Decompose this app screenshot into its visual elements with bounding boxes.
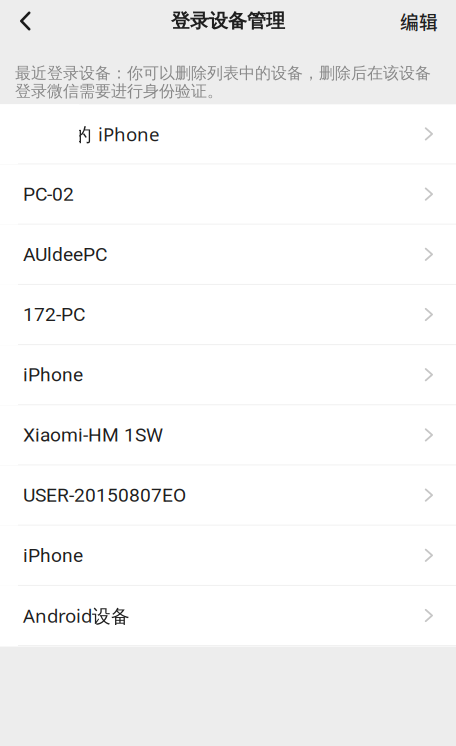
- staticText: USER-20150807EO: [23, 484, 186, 506]
- button[interactable]: Xiaomi-HM 1SW: [0, 405, 456, 465]
- button[interactable]: iPhone: [0, 526, 456, 586]
- button[interactable]: AUldeePC: [0, 225, 456, 285]
- staticText: 编辑: [400, 7, 438, 34]
- staticText: Android设备: [23, 603, 130, 628]
- staticText: iPhone: [23, 363, 83, 386]
- staticText: PC-02: [23, 183, 74, 205]
- button[interactable]: 172-PC: [0, 285, 456, 345]
- button[interactable]: 编辑: [384, 0, 456, 42]
- button[interactable]: iPhone: [0, 345, 456, 405]
- staticText: 登录微信需要进行身份验证。: [15, 81, 223, 101]
- staticText: AUldeePC: [23, 243, 107, 266]
- staticText: 的 iPhone: [73, 121, 160, 147]
- button[interactable]: 的 iPhone: [0, 104, 456, 164]
- button[interactable]: Android设备: [0, 586, 456, 646]
- button[interactable]: PC-02: [0, 164, 456, 225]
- button[interactable]: USER-20150807EO: [0, 465, 456, 526]
- staticText: 最近登录设备：你可以删除列表中的设备，删除后在该设备: [15, 63, 431, 83]
- staticText: iPhone: [23, 544, 83, 567]
- staticText: 172-PC: [23, 303, 85, 326]
- staticText: 登录设备管理: [171, 9, 285, 33]
- staticText: Xiaomi-HM 1SW: [23, 424, 163, 446]
- button[interactable]: Back: [0, 0, 42, 42]
